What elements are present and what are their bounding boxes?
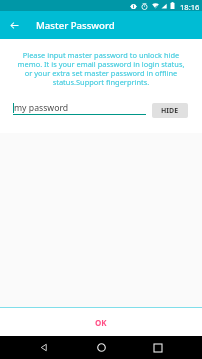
staticText: Please input master password to unlock h… <box>13 50 189 88</box>
staticText: Master Password <box>36 19 115 32</box>
staticText: OK <box>95 317 107 328</box>
button[interactable]: Home <box>89 336 113 359</box>
button[interactable]: Recent apps <box>146 336 170 359</box>
staticText: my password <box>14 102 69 114</box>
staticText: 18:16 <box>180 2 200 12</box>
button[interactable]: OK <box>0 308 202 336</box>
button[interactable]: Navigate up <box>6 17 22 33</box>
staticText: HIDE <box>161 106 179 116</box>
button[interactable]: Back <box>32 336 56 359</box>
button[interactable]: HIDE <box>152 103 188 118</box>
